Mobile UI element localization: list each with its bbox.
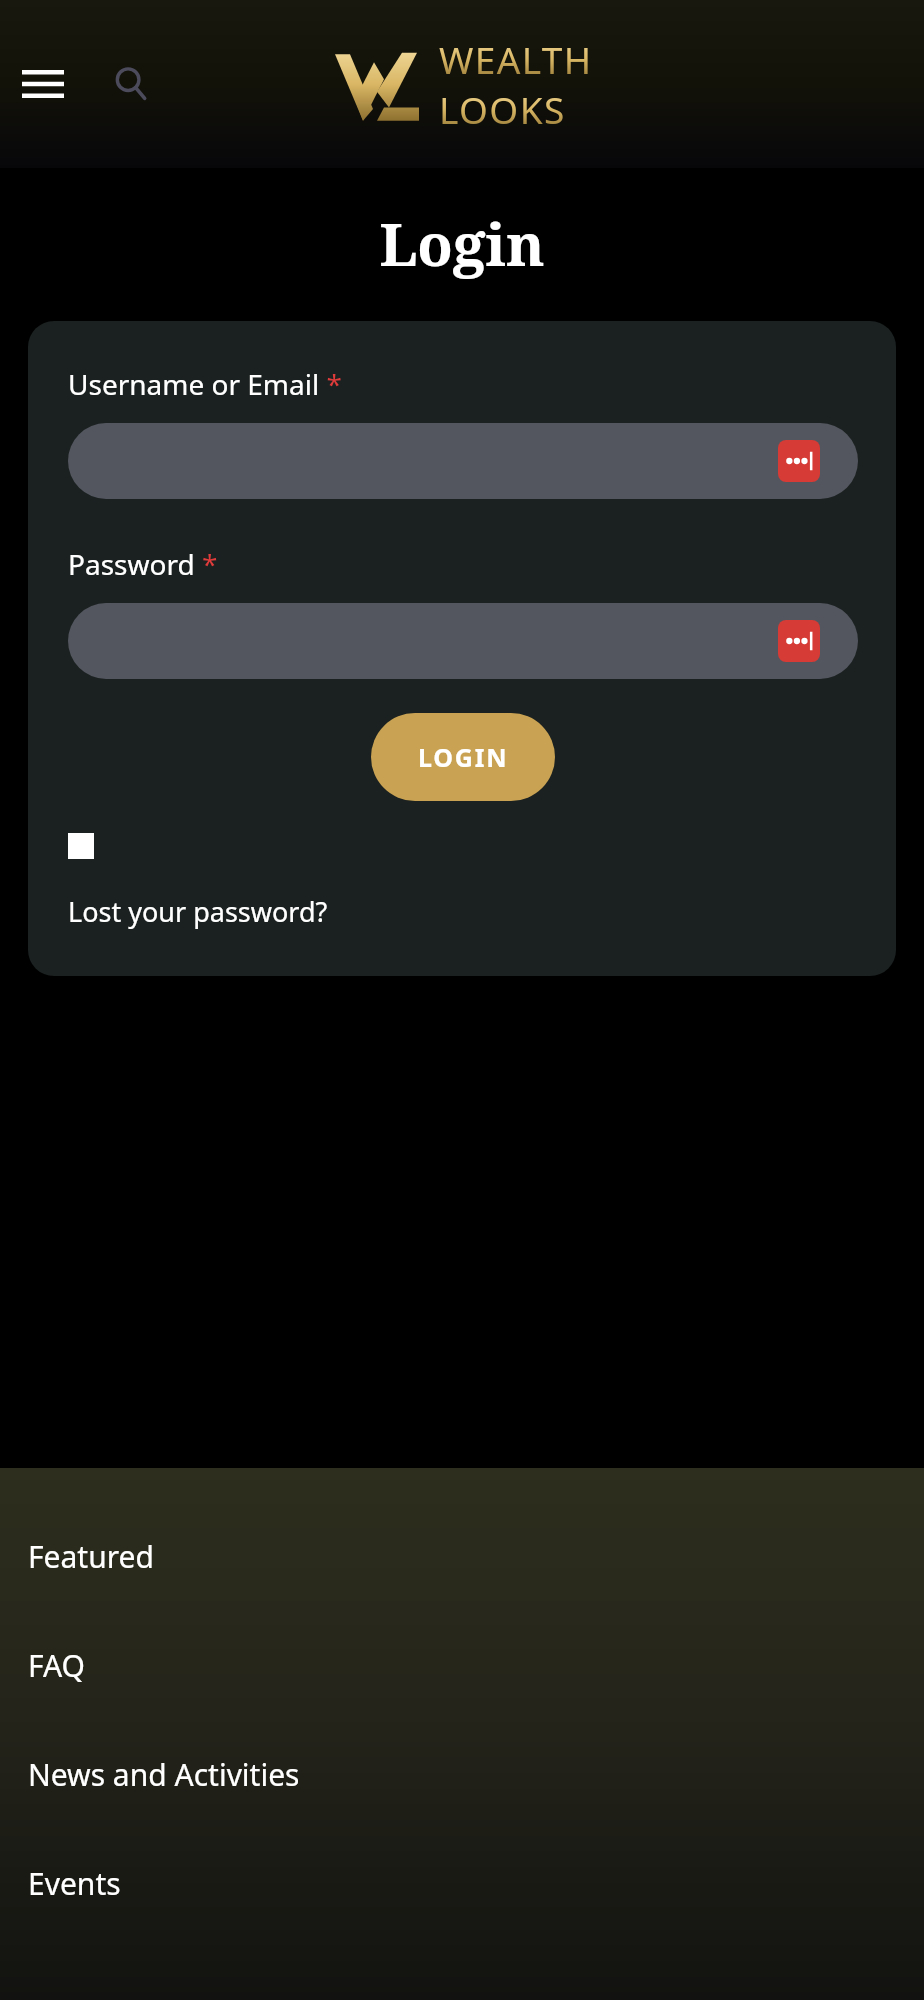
staticText: News and Activities xyxy=(28,1754,300,1795)
button[interactable]: LOGIN xyxy=(371,713,555,801)
button[interactable]: Events xyxy=(28,1829,924,1938)
button[interactable]: News and Activities xyxy=(28,1720,924,1829)
button[interactable]: Featured xyxy=(28,1502,924,1611)
staticText: Featured xyxy=(28,1536,154,1577)
button[interactable]: Username or Email input xyxy=(68,423,858,499)
staticText: Password * xyxy=(68,545,218,583)
button[interactable]: Search xyxy=(102,55,160,113)
staticText: FAQ xyxy=(28,1645,85,1686)
staticText: Lost your password? xyxy=(68,893,328,930)
staticText: Username or Email * xyxy=(68,365,342,403)
button[interactable]: WEALTH xyxy=(331,34,593,134)
staticText: WEALTH xyxy=(439,34,593,84)
button[interactable]: Password input xyxy=(68,603,858,679)
staticText: Login xyxy=(0,204,924,283)
button[interactable]: FAQ xyxy=(28,1611,924,1720)
button[interactable]: Lost your password? xyxy=(68,893,328,930)
staticText: LOGIN xyxy=(418,740,509,774)
button[interactable]: Menu xyxy=(12,53,74,115)
staticText: Events xyxy=(28,1863,121,1904)
staticText: LOOKS xyxy=(439,84,566,134)
